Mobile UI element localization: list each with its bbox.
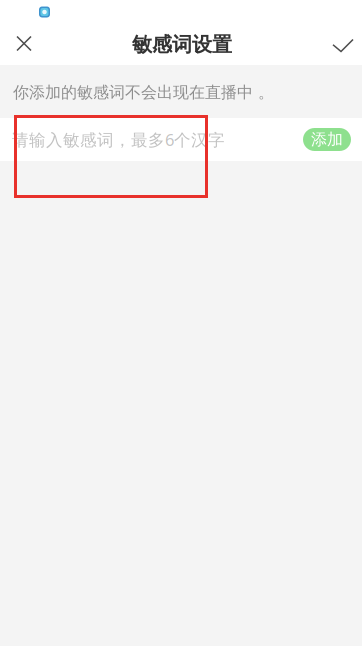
button[interactable]: 请输入敏感词，最多6个汉字 <box>0 118 303 161</box>
button[interactable]: 添加 <box>303 128 362 151</box>
button[interactable]: Done <box>322 24 362 65</box>
staticText: 你添加的敏感词不会出现在直播中 。 <box>13 83 274 102</box>
staticText: 添加 <box>311 130 343 149</box>
staticText: 请输入敏感词，最多6个汉字 <box>12 128 225 151</box>
staticText: 敏感词设置 <box>132 32 232 57</box>
button[interactable]: Close <box>0 24 48 65</box>
